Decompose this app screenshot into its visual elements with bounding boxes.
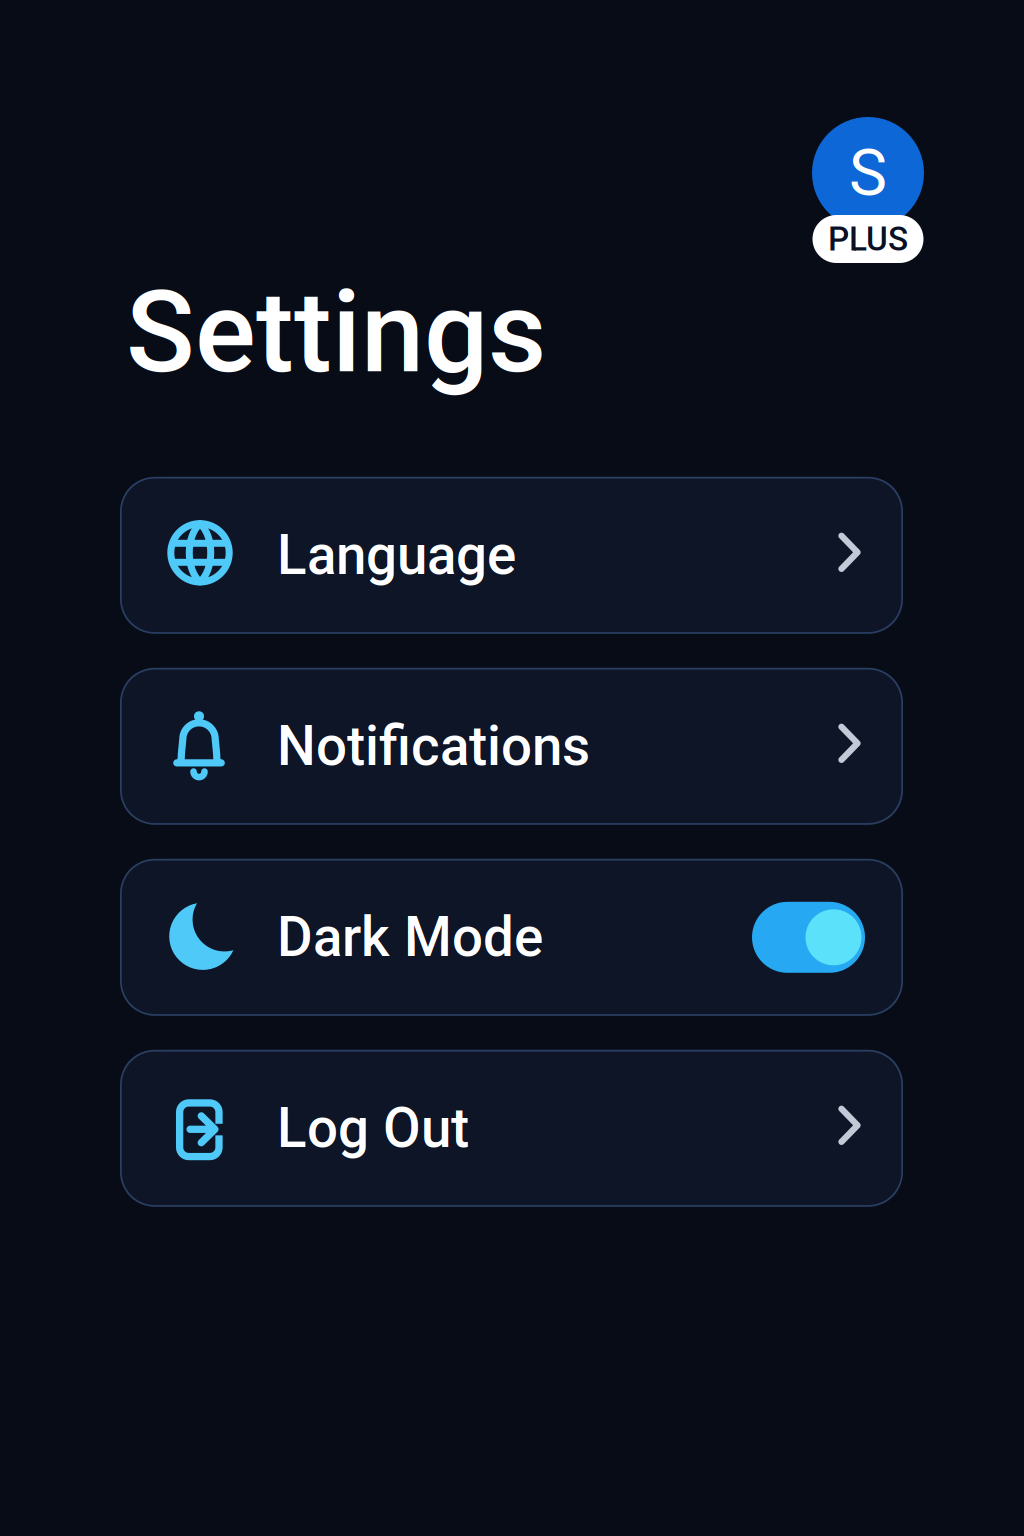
- staticText: Dark Mode: [277, 905, 543, 969]
- staticText: Log Out: [277, 1096, 469, 1160]
- staticText: PLUS: [828, 219, 908, 259]
- staticText: S: [849, 135, 887, 210]
- staticText: Notifications: [277, 714, 590, 778]
- button[interactable]: Log Out: [120, 1050, 903, 1207]
- staticText: Settings: [126, 266, 546, 399]
- button[interactable]: Scuttle Plus account: [812, 100, 924, 246]
- staticText: Language: [277, 523, 516, 587]
- button[interactable]: Language: [120, 477, 903, 634]
- button[interactable]: Notifications: [120, 668, 903, 825]
- button[interactable]: Dark Mode, on: [752, 902, 865, 973]
- button[interactable]: Dark Mode: [120, 859, 903, 1016]
